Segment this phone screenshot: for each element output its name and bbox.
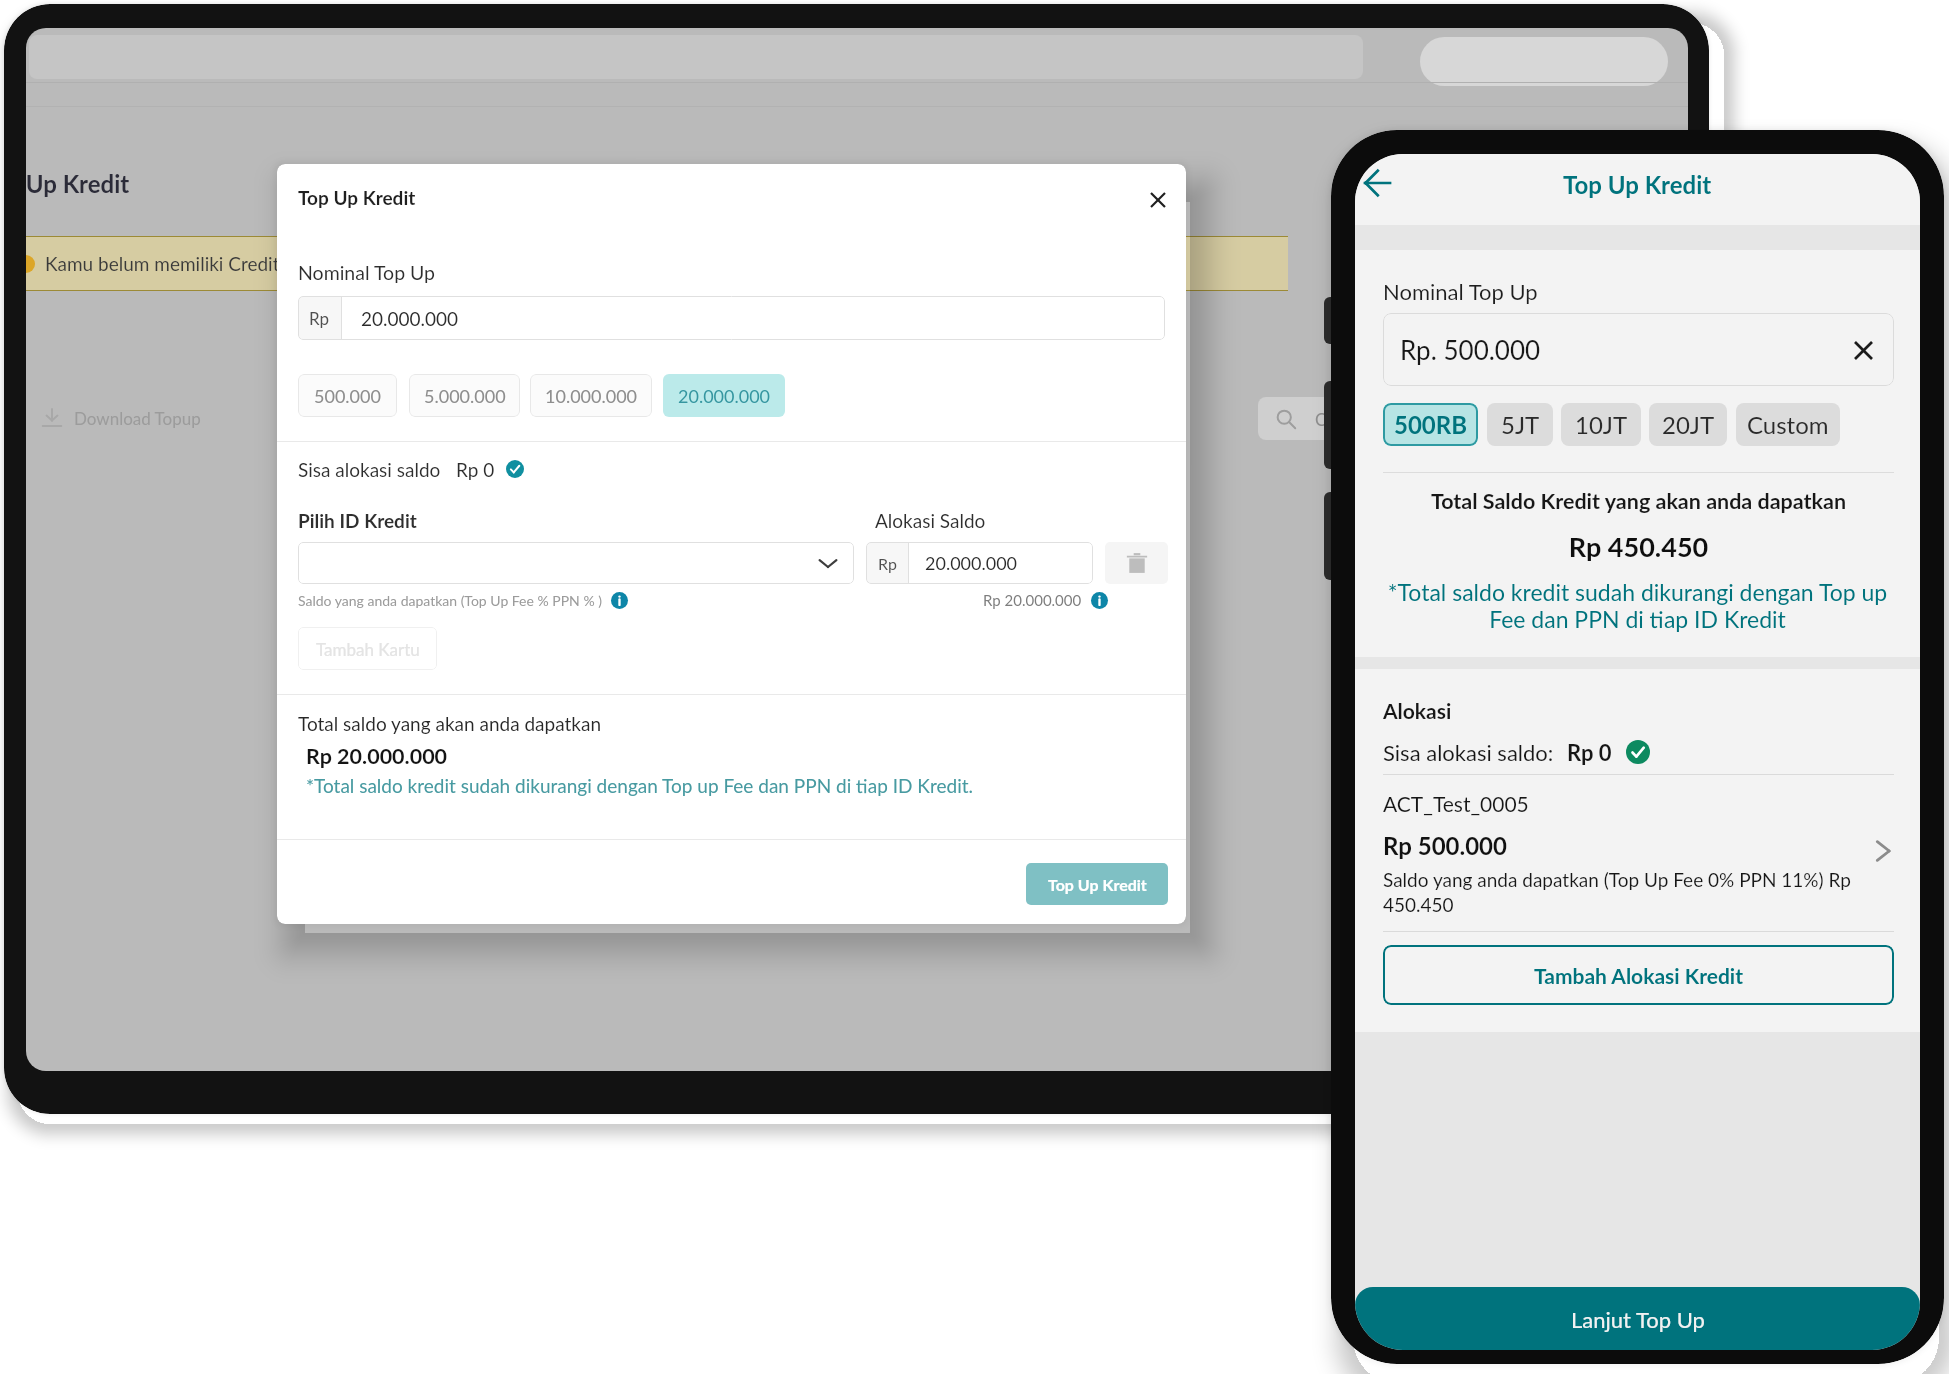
staticText: Rp 500.000 — [1383, 831, 1507, 860]
staticText: Rp — [309, 308, 330, 328]
staticText: Pilih ID Kredit — [298, 509, 417, 532]
staticText: Rp 20.000.000 — [306, 743, 448, 769]
button[interactable]: 20JT — [1649, 403, 1727, 446]
staticText: Rp 0 — [1567, 739, 1612, 765]
staticText: 450.450 — [1383, 893, 1883, 916]
staticText: Alokasi Saldo — [875, 509, 986, 532]
staticText: Rp 20.000.000 — [983, 591, 1082, 609]
staticText: 10.000.000 — [545, 385, 638, 407]
staticText: 20.000.000 — [361, 307, 459, 330]
staticText: Rp 0 — [456, 458, 495, 481]
button[interactable]: 20.000.000 — [663, 374, 785, 417]
button[interactable]: 10JT — [1561, 403, 1641, 446]
button[interactable]: 10.000.000 — [530, 374, 652, 417]
button[interactable]: 500RB — [1383, 403, 1478, 446]
staticText: Tambah Kartu — [316, 639, 420, 659]
staticText: Nominal Top Up — [1383, 278, 1538, 304]
button[interactable]: ACT_Test_0005 — [1355, 779, 1920, 929]
staticText: 5JT — [1501, 410, 1540, 439]
button[interactable]: 5JT — [1487, 403, 1553, 446]
staticText: Total saldo yang akan anda dapatkan — [298, 712, 602, 735]
staticText: Top Up Kredit — [1563, 170, 1712, 199]
staticText: Lanjut Top Up — [1571, 1306, 1705, 1332]
staticText: Custom — [1747, 410, 1829, 439]
button[interactable]: Tambah Alokasi Kredit — [1383, 945, 1894, 1005]
staticText: Alokasi — [1383, 698, 1452, 723]
button[interactable]: Back — [1355, 158, 1402, 208]
staticText: Download Topup — [74, 408, 201, 428]
button[interactable]: Rp. 500.000 — [1383, 313, 1894, 386]
staticText: Saldo yang anda dapatkan (Top Up Fee 0% … — [1383, 868, 1883, 891]
button[interactable]: Close dialog — [1140, 182, 1176, 218]
staticText: Rp. 500.000 — [1400, 334, 1541, 365]
staticText: Sisa alokasi saldo: — [1383, 739, 1554, 765]
staticText: Top Up Kredit — [26, 169, 130, 198]
staticText: 10JT — [1575, 410, 1628, 439]
button[interactable]: Pilih ID Kredit — [298, 542, 854, 584]
staticText: Total Saldo Kredit yang akan anda dapatk… — [1383, 488, 1894, 514]
staticText: Fee dan PPN di tiap ID Kredit — [1375, 605, 1900, 633]
button[interactable]: 5.000.000 — [409, 374, 520, 417]
button[interactable]: Clear amount — [1841, 328, 1885, 372]
staticText: 20.000.000 — [678, 385, 771, 407]
staticText: *Total saldo kredit sudah dikurangi deng… — [1375, 578, 1900, 606]
staticText: Sisa alokasi saldo — [298, 458, 441, 481]
staticText: Ca — [1315, 409, 1335, 429]
staticText: Rp 450.450 — [1383, 530, 1894, 562]
staticText: 5.000.000 — [424, 385, 506, 407]
staticText: Saldo yang anda dapatkan (Top Up Fee % P… — [298, 592, 602, 609]
button[interactable]: Lanjut Top Up — [1355, 1287, 1920, 1350]
staticText: *Total saldo kredit sudah dikurangi deng… — [306, 774, 973, 797]
button[interactable]: Delete allocation — [1105, 542, 1168, 584]
staticText: Nominal Top Up — [298, 261, 436, 284]
staticText: Rp — [878, 554, 897, 573]
button[interactable]: Top Up Kredit — [1026, 863, 1168, 905]
staticText: Kamu belum memiliki Credit — [45, 252, 280, 275]
button[interactable]: Custom — [1736, 403, 1840, 446]
button[interactable]: 500.000 — [298, 374, 397, 417]
staticText: 500.000 — [314, 385, 381, 407]
staticText: Tambah Alokasi Kredit — [1534, 963, 1743, 988]
staticText: Top Up Kredit — [298, 186, 416, 209]
button[interactable]: Ca — [1258, 397, 1438, 440]
staticText: 20.000.000 — [925, 552, 1018, 574]
button[interactable]: Tambah Kartu — [298, 627, 437, 670]
staticText: 500RB — [1394, 410, 1467, 439]
staticText: 20JT — [1662, 410, 1715, 439]
staticText: Top Up Kredit — [1048, 875, 1147, 894]
staticText: ACT_Test_0005 — [1383, 791, 1529, 816]
